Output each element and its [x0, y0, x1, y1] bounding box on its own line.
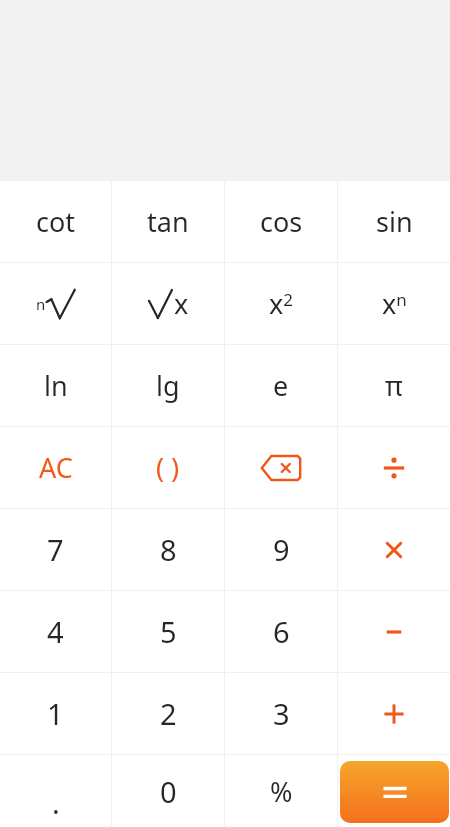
button[interactable]: 8: [112, 509, 224, 590]
button[interactable]: ( ): [112, 427, 224, 508]
button[interactable]: lg: [112, 345, 224, 426]
button[interactable]: Plus: [338, 673, 450, 754]
staticText: tan: [147, 203, 189, 240]
staticText: ln: [44, 367, 68, 404]
button[interactable]: Minus: [338, 591, 450, 672]
button[interactable]: tan: [112, 181, 224, 262]
button[interactable]: nth root: [0, 263, 111, 344]
button[interactable]: Backspace: [225, 427, 337, 508]
staticText: 2: [160, 694, 177, 733]
button[interactable]: 7: [0, 509, 111, 590]
staticText: x: [174, 285, 189, 322]
staticText: 9: [273, 530, 290, 569]
staticText: 4: [47, 612, 64, 651]
staticText: 7: [47, 530, 64, 569]
button[interactable]: 1: [0, 673, 111, 754]
staticText: .: [52, 783, 60, 822]
button[interactable]: π: [338, 345, 450, 426]
staticText: cot: [36, 203, 76, 240]
button[interactable]: sin: [338, 181, 450, 262]
staticText: lg: [156, 367, 180, 404]
button[interactable]: Equals: [340, 761, 449, 823]
button[interactable]: 4: [0, 591, 111, 672]
staticText: e: [273, 367, 289, 404]
staticText: xn: [382, 285, 407, 322]
staticText: AC: [39, 449, 73, 486]
button[interactable]: square root: [112, 263, 224, 344]
staticText: 3: [273, 694, 290, 733]
button[interactable]: %: [225, 755, 337, 827]
button[interactable]: xn: [338, 263, 450, 344]
staticText: sin: [376, 203, 413, 240]
button[interactable]: x2: [225, 263, 337, 344]
button[interactable]: cot: [0, 181, 111, 262]
staticText: 0: [160, 772, 177, 811]
staticText: 8: [160, 530, 177, 569]
staticText: x2: [269, 285, 294, 322]
button[interactable]: 9: [225, 509, 337, 590]
button[interactable]: cos: [225, 181, 337, 262]
button[interactable]: 3: [225, 673, 337, 754]
button[interactable]: AC: [0, 427, 111, 508]
button[interactable]: ln: [0, 345, 111, 426]
button[interactable]: Multiply: [338, 509, 450, 590]
button[interactable]: 0: [112, 755, 224, 827]
staticText: π: [385, 367, 403, 404]
staticText: n: [36, 294, 46, 314]
staticText: %: [270, 773, 293, 810]
button[interactable]: 5: [112, 591, 224, 672]
staticText: cos: [260, 203, 303, 240]
button[interactable]: Divide: [338, 427, 450, 508]
staticText: 5: [160, 612, 177, 651]
staticText: 1: [47, 694, 64, 733]
button[interactable]: e: [225, 345, 337, 426]
staticText: ( ): [156, 449, 180, 486]
staticText: 6: [273, 612, 290, 651]
button[interactable]: .: [0, 755, 111, 827]
button[interactable]: 6: [225, 591, 337, 672]
button[interactable]: 2: [112, 673, 224, 754]
